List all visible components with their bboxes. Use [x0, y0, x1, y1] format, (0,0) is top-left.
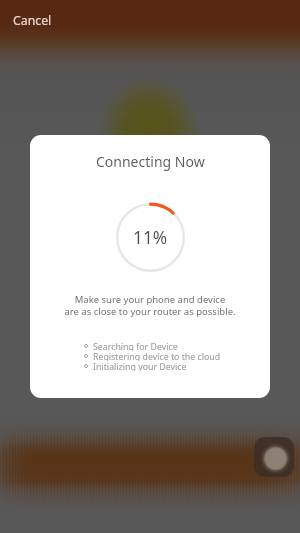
staticText: Cancel: [13, 12, 52, 29]
staticText: Make sure your phone and device are as c…: [64, 293, 236, 318]
button[interactable]: Searching for Device: [84, 341, 178, 351]
staticText: Searching for Device: [93, 341, 178, 351]
button[interactable]: Assistive touch: [254, 437, 294, 477]
staticText: Initializing your Device: [93, 361, 187, 371]
button[interactable]: Registering device to the cloud: [84, 351, 221, 361]
button[interactable]: Initializing your Device: [84, 361, 187, 371]
staticText: Connecting Now: [96, 152, 205, 171]
staticText: Registering device to the cloud: [93, 351, 221, 361]
button[interactable]: Cancel: [8, 8, 57, 33]
staticText: 11%: [133, 226, 168, 250]
